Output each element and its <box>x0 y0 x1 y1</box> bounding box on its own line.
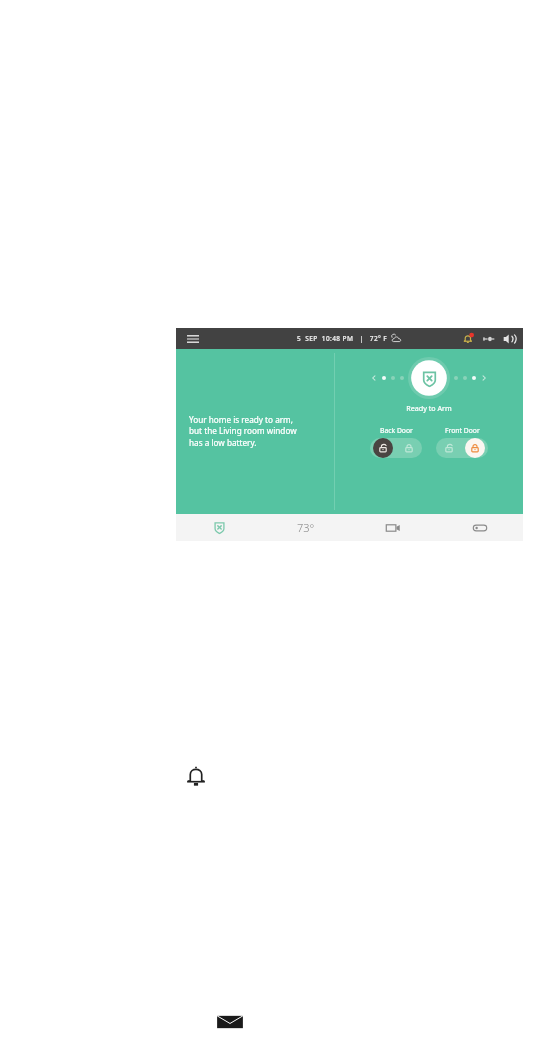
button[interactable]: Microphone off <box>482 332 496 346</box>
button[interactable]: Volume <box>502 332 516 346</box>
button[interactable]: Front Door lock <box>462 438 488 458</box>
button[interactable]: Next <box>478 372 490 384</box>
staticText: 5 SEP 10:48 PM | 72° F <box>297 334 388 343</box>
button[interactable]: Back Door unlock <box>370 438 396 458</box>
button[interactable]: Front Door unlock <box>436 438 462 458</box>
button[interactable]: Cameras <box>349 514 436 541</box>
button[interactable]: Back Door lock <box>396 438 422 458</box>
button[interactable]: Devices <box>436 514 523 541</box>
button[interactable]: 73° <box>262 514 349 541</box>
staticText: Back Door <box>380 426 413 435</box>
button[interactable]: Your home is ready to arm, but the Livin… <box>176 349 334 514</box>
staticText: 73° <box>297 520 315 535</box>
button[interactable]: Ready to Arm <box>408 357 450 399</box>
button[interactable]: Menu <box>184 330 202 348</box>
button[interactable]: Security <box>176 514 262 541</box>
button[interactable]: Notifications <box>461 332 475 346</box>
button[interactable]: Previous <box>368 372 380 384</box>
staticText: Front Door <box>445 426 480 435</box>
staticText: Ready to Arm <box>406 403 452 413</box>
staticText: Your home is ready to arm, but the Livin… <box>189 414 297 449</box>
